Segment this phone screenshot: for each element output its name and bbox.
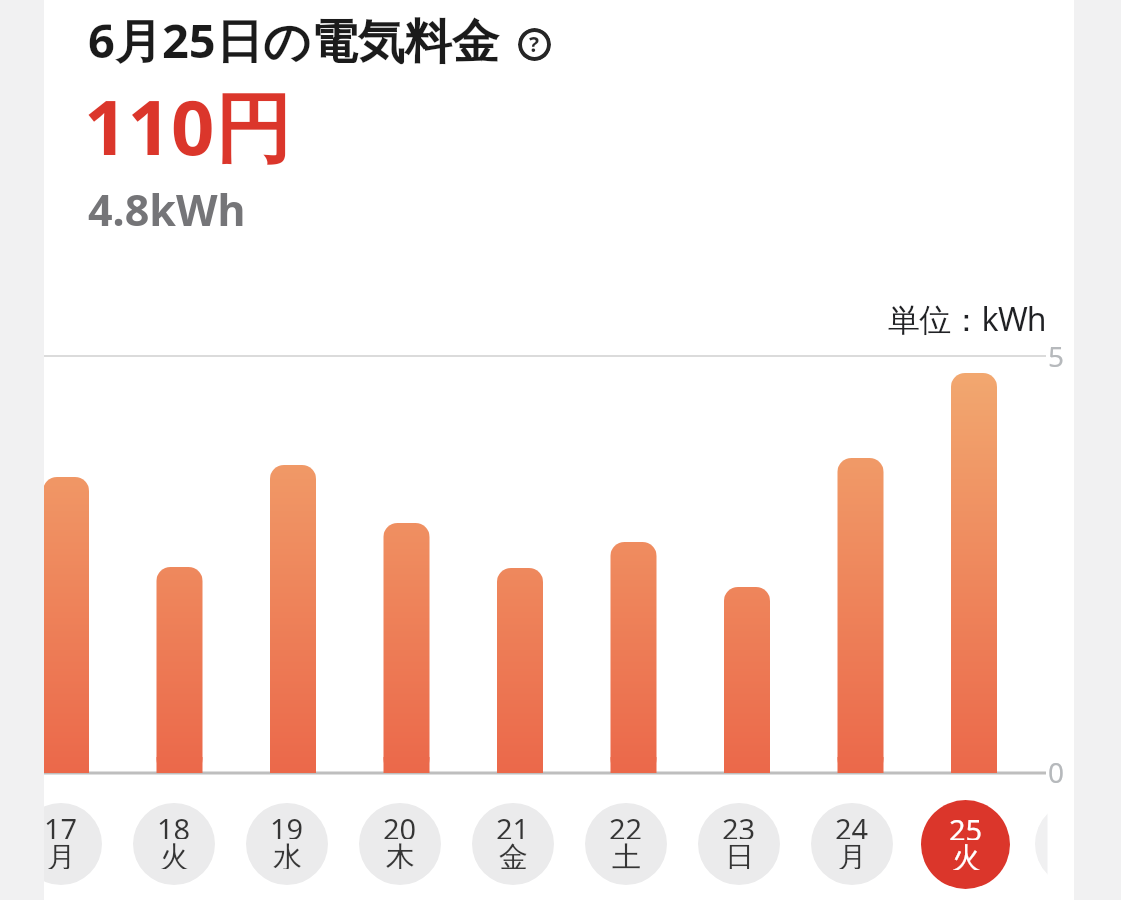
staticText: ?	[529, 30, 540, 59]
staticText: 単位：kWh	[888, 297, 1046, 341]
staticText: 木	[386, 839, 415, 869]
button[interactable]: 21	[472, 803, 554, 885]
button[interactable]: 23	[698, 803, 780, 885]
staticText: 水	[273, 839, 302, 869]
staticText: 25	[949, 810, 983, 840]
staticText: 18	[157, 809, 191, 839]
staticText: 19	[270, 809, 304, 839]
button[interactable]: 25	[921, 800, 1010, 889]
button[interactable]: 19	[246, 803, 328, 885]
staticText: 土	[612, 839, 641, 869]
staticText: 17	[44, 809, 78, 839]
staticText: 6月25日の電気料金	[88, 8, 499, 72]
staticText: 5	[1048, 337, 1065, 375]
staticText: 月	[838, 839, 867, 869]
staticText: 0	[1048, 753, 1065, 791]
button[interactable]: 17	[44, 803, 102, 885]
button[interactable]: 22	[585, 803, 667, 885]
staticText: 月	[47, 839, 76, 869]
staticText: 110円	[84, 74, 291, 174]
staticText: 20	[383, 809, 417, 839]
staticText: 火	[952, 840, 981, 870]
button[interactable]: 20	[359, 803, 441, 885]
staticText: 24	[835, 809, 869, 839]
staticText: 4.8kWh	[88, 180, 246, 239]
button[interactable]: 24	[811, 803, 893, 885]
staticText: 金	[499, 839, 528, 869]
button[interactable]: ?	[518, 28, 551, 61]
staticText: 23	[722, 809, 756, 839]
button[interactable]: 18	[133, 803, 215, 885]
staticText: 22	[609, 809, 643, 839]
staticText: 21	[496, 809, 530, 839]
staticText: 日	[725, 839, 754, 869]
staticText: 火	[160, 839, 189, 869]
